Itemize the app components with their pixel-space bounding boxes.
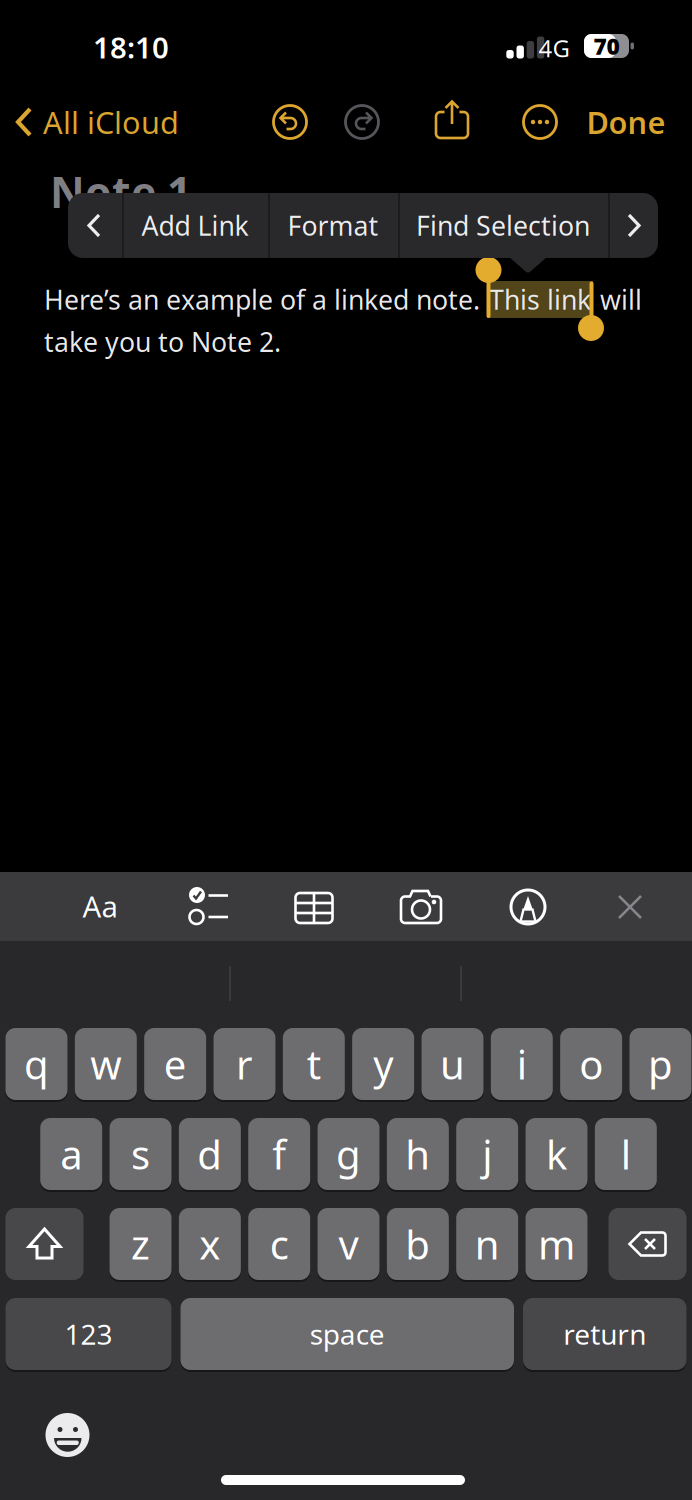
button[interactable]: Redo <box>342 102 382 142</box>
staticText: b <box>405 1217 430 1270</box>
staticText: h <box>405 1127 430 1180</box>
button[interactable]: k <box>525 1118 587 1190</box>
button[interactable]: m <box>525 1208 587 1280</box>
staticText: Note 1 <box>50 163 191 220</box>
staticText: z <box>131 1217 150 1270</box>
staticText: o <box>579 1037 603 1090</box>
staticText: will <box>593 282 642 317</box>
button[interactable]: Done <box>586 102 665 142</box>
staticText: s <box>131 1127 150 1180</box>
button[interactable]: h <box>387 1118 449 1190</box>
button[interactable]: t <box>283 1028 345 1100</box>
staticText: u <box>440 1037 465 1090</box>
button[interactable]: u <box>421 1028 483 1100</box>
staticText: k <box>546 1127 567 1180</box>
staticText: n <box>475 1217 500 1270</box>
button[interactable]: All iCloud <box>15 100 179 144</box>
button[interactable]: Format <box>70 876 130 936</box>
staticText: Add Link <box>141 208 248 243</box>
staticText: e <box>164 1037 187 1090</box>
button[interactable]: Share <box>432 99 472 143</box>
button[interactable]: Camera <box>397 883 445 931</box>
staticText: 70 <box>593 31 619 61</box>
staticText: Find Selection <box>416 208 590 243</box>
button[interactable]: p <box>629 1028 691 1100</box>
staticText: Here’s an example of a linked note. <box>44 282 487 317</box>
button[interactable]: Undo <box>270 102 310 142</box>
button[interactable]: space <box>180 1298 514 1370</box>
staticText: d <box>197 1127 222 1180</box>
button[interactable]: Dismiss <box>610 887 650 927</box>
staticText: 18:10 <box>93 27 169 66</box>
button[interactable]: Previous menu items <box>68 193 122 258</box>
staticText: Format <box>287 208 378 243</box>
button[interactable]: q <box>5 1028 67 1100</box>
button[interactable]: More <box>520 102 560 142</box>
button[interactable]: Delete <box>608 1208 686 1280</box>
staticText: m <box>538 1217 575 1270</box>
staticText: a <box>60 1127 82 1180</box>
button[interactable]: Table <box>290 883 338 931</box>
button[interactable]: o <box>560 1028 622 1100</box>
staticText: r <box>236 1037 253 1090</box>
staticText: l <box>621 1127 631 1180</box>
button[interactable]: Markup <box>504 883 552 931</box>
button[interactable]: r <box>213 1028 275 1100</box>
staticText: p <box>648 1037 673 1090</box>
staticText: 4G <box>538 32 569 64</box>
button[interactable]: f <box>248 1118 310 1190</box>
button[interactable]: w <box>75 1028 137 1100</box>
staticText: take you to Note 2. <box>44 324 281 359</box>
staticText: i <box>517 1037 527 1090</box>
button[interactable]: a <box>40 1118 102 1190</box>
staticText: 123 <box>64 1315 112 1353</box>
button[interactable]: y <box>352 1028 414 1100</box>
button[interactable]: Checklist <box>184 883 232 931</box>
button[interactable]: return <box>523 1298 686 1370</box>
button[interactable]: n <box>456 1208 518 1280</box>
button[interactable]: v <box>317 1208 379 1280</box>
staticText: return <box>563 1315 646 1353</box>
staticText: This link <box>489 282 591 317</box>
button[interactable]: x <box>179 1208 241 1280</box>
staticText: All iCloud <box>43 102 179 142</box>
button[interactable]: 123 <box>5 1298 171 1370</box>
button[interactable]: z <box>109 1208 171 1280</box>
button[interactable]: Shift <box>5 1208 83 1280</box>
staticText: x <box>199 1217 220 1270</box>
button[interactable]: g <box>317 1118 379 1190</box>
staticText: Aa <box>82 886 117 925</box>
button[interactable]: d <box>179 1118 241 1190</box>
button[interactable]: Emoji <box>45 1413 89 1457</box>
staticText: Done <box>586 102 665 142</box>
button[interactable]: More menu items <box>608 193 658 258</box>
button[interactable]: Find Selection <box>398 193 608 258</box>
button[interactable]: i <box>491 1028 553 1100</box>
button[interactable]: Format <box>268 193 398 258</box>
staticText: f <box>272 1127 286 1180</box>
staticText: t <box>307 1037 321 1090</box>
button[interactable]: l <box>595 1118 657 1190</box>
button[interactable]: b <box>387 1208 449 1280</box>
staticText: v <box>338 1217 358 1270</box>
button[interactable]: c <box>248 1208 310 1280</box>
staticText: q <box>24 1037 49 1090</box>
button[interactable]: e <box>144 1028 206 1100</box>
staticText: w <box>90 1037 121 1090</box>
button[interactable]: s <box>109 1118 171 1190</box>
staticText: j <box>482 1127 492 1180</box>
button[interactable]: Add Link <box>122 193 268 258</box>
staticText: g <box>336 1127 361 1180</box>
staticText: space <box>310 1315 385 1353</box>
staticText: c <box>270 1217 289 1270</box>
button[interactable]: j <box>456 1118 518 1190</box>
staticText: y <box>373 1037 393 1090</box>
